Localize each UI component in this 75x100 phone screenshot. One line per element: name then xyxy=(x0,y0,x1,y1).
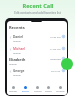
staticText: Recents xyxy=(9,25,25,30)
button[interactable]: Contacts xyxy=(32,86,43,93)
staticText: George xyxy=(13,69,25,73)
button[interactable]: Daniel xyxy=(7,33,67,45)
staticText: Michael xyxy=(13,47,26,51)
staticText: Favorites xyxy=(9,90,18,93)
staticText: Recents xyxy=(22,90,29,93)
staticText: Daniel xyxy=(13,35,23,39)
staticText: Elizabeth xyxy=(9,57,26,62)
button[interactable]: New call xyxy=(61,58,73,70)
staticText: Edit contacts and add favorites list xyxy=(14,11,61,15)
button[interactable]: Voicemail xyxy=(55,86,66,93)
button[interactable]: Favorites xyxy=(8,86,19,93)
staticText: Contacts xyxy=(34,90,42,93)
staticText: Mobile xyxy=(13,73,21,76)
staticText: Keypad xyxy=(45,90,52,93)
staticText: Yesterday xyxy=(50,57,61,60)
staticText: Mobile xyxy=(13,51,21,54)
staticText: 12:30 PM xyxy=(50,35,61,38)
button[interactable]: Elizabeth xyxy=(7,55,67,67)
button[interactable]: Keypad xyxy=(43,86,54,93)
staticText: Mobile xyxy=(13,39,21,42)
staticText: Mobile xyxy=(9,62,17,65)
button[interactable]: Recents xyxy=(20,86,31,93)
staticText: Voicemail xyxy=(56,90,65,93)
staticText: Recent Call xyxy=(22,2,54,10)
staticText: 9:47 AM xyxy=(51,69,61,72)
button[interactable]: George xyxy=(7,67,67,79)
button[interactable]: Michael xyxy=(7,45,67,57)
staticText: 11:02 AM xyxy=(50,47,61,50)
